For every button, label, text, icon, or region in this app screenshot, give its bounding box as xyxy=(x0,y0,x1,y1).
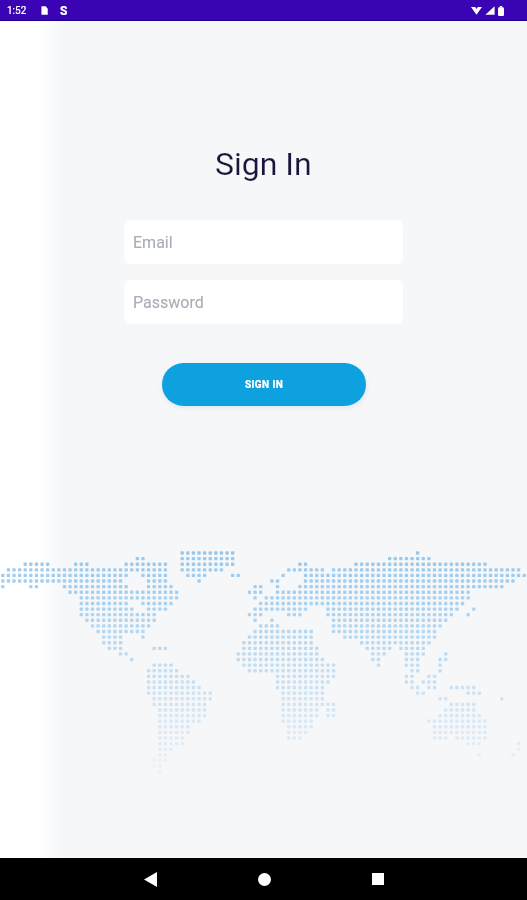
button[interactable]: Password xyxy=(124,280,403,324)
button[interactable]: Home xyxy=(236,858,292,900)
button[interactable]: SIGN IN xyxy=(162,363,366,406)
button[interactable]: Email xyxy=(124,220,403,264)
staticText: Sign In xyxy=(215,145,312,183)
button[interactable]: Recent apps xyxy=(350,858,406,900)
staticText: Email xyxy=(133,233,173,252)
staticText: SIGN IN xyxy=(245,379,284,391)
staticText: S xyxy=(60,4,68,18)
staticText: Password xyxy=(133,293,204,312)
button[interactable]: Back xyxy=(122,858,178,900)
staticText: 1:52 xyxy=(7,5,27,17)
